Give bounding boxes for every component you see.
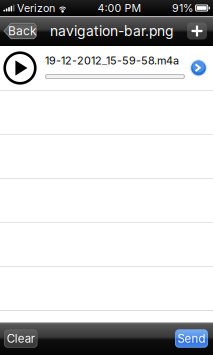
- staticText: Back: [8, 24, 37, 38]
- button[interactable]: 19-12-2012_15-59-58.m4a: [0, 46, 213, 90]
- staticText: Send: [177, 332, 205, 345]
- button[interactable]: Back: [3, 22, 37, 39]
- button[interactable]: Send: [175, 329, 208, 348]
- staticText: navigation-bar.png: [50, 23, 174, 39]
- staticText: 4:00 PM: [98, 1, 142, 14]
- staticText: 91%: [172, 1, 193, 14]
- staticText: 19-12-2012_15-59-58.m4a: [45, 54, 179, 67]
- button[interactable]: Add: [187, 22, 207, 39]
- button[interactable]: Clear: [4, 329, 37, 348]
- staticText: Verizon: [17, 1, 55, 14]
- staticText: Clear: [7, 332, 35, 345]
